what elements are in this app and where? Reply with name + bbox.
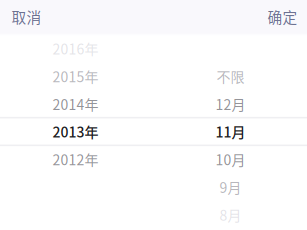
staticText: 9月 [219,177,241,197]
button[interactable]: 11月 [154,118,307,145]
staticText: 11月 [215,121,245,142]
staticText: 10月 [215,149,245,169]
button[interactable]: 取消 [0,0,55,33]
button[interactable]: 不限 [154,62,307,90]
staticText: 确定 [267,6,297,27]
button[interactable]: 10月 [154,145,307,173]
button[interactable]: 2016年 [0,35,152,62]
staticText: 2014年 [52,94,98,114]
button[interactable]: 9月 [154,173,307,201]
staticText: 不限 [216,66,244,86]
staticText: 2013年 [52,121,98,142]
button[interactable]: 2015年 [0,62,152,90]
staticText: 12月 [215,94,245,114]
button[interactable]: 2012年 [0,145,152,173]
button[interactable]: 8月 [154,201,307,228]
staticText: 8月 [219,204,241,225]
staticText: 2016年 [52,38,98,59]
button[interactable]: 2013年 [0,118,152,145]
button[interactable]: 2014年 [0,90,152,118]
staticText: 取消 [11,6,41,27]
staticText: 2012年 [52,149,98,169]
button[interactable]: 12月 [154,90,307,118]
staticText: 2015年 [52,66,98,86]
button[interactable]: 确定 [253,0,307,33]
